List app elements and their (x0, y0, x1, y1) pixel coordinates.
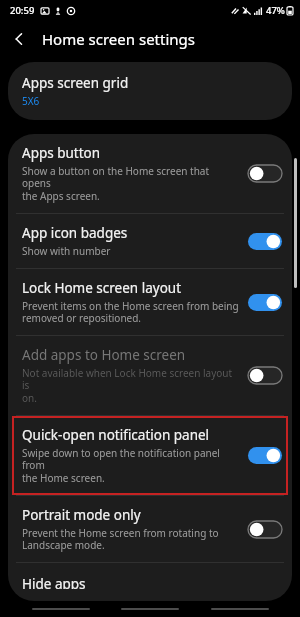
staticText: Swipe down to open the notification pane… (22, 446, 240, 485)
button[interactable]: Switch on (248, 294, 282, 311)
button[interactable]: Switch off (248, 367, 282, 384)
staticText: App icon badges (22, 224, 128, 242)
button[interactable]: Hide apps (8, 563, 292, 601)
staticText: Apps button (22, 144, 101, 162)
staticText: Prevent items on the Home screen from be… (22, 299, 239, 325)
button[interactable]: Switch on (248, 233, 282, 250)
button[interactable]: Home (121, 604, 179, 614)
staticText: Portrait mode only (22, 506, 141, 524)
button[interactable]: Quick-open notification panel (8, 416, 292, 495)
staticText: Show a button on the Home screen that op… (22, 164, 240, 203)
button[interactable]: Switch off (248, 165, 282, 182)
button[interactable]: Add apps to Home screen (8, 336, 292, 415)
button[interactable]: Back (211, 604, 269, 614)
staticText: 47% (266, 4, 285, 17)
button[interactable]: Portrait mode only (8, 496, 292, 562)
button[interactable]: Recents (32, 604, 90, 614)
button[interactable]: Back (0, 20, 38, 58)
staticText: Lock Home screen layout (22, 279, 182, 297)
staticText: Home screen settings (42, 29, 195, 49)
button[interactable]: Switch off (248, 521, 282, 538)
staticText: Add apps to Home screen (22, 346, 186, 364)
staticText: Prevent the Home screen from rotating to… (22, 526, 219, 552)
button[interactable]: Switch on (248, 447, 282, 464)
staticText: Apps screen grid (22, 74, 129, 92)
button[interactable]: Apps screen grid (8, 62, 292, 120)
staticText: Show with number (22, 244, 111, 258)
button[interactable]: Lock Home screen layout (8, 269, 292, 335)
staticText: 20:59 (10, 4, 35, 17)
staticText: Hide apps (22, 575, 86, 589)
button[interactable]: App icon badges (8, 214, 292, 268)
staticText: Quick-open notification panel (22, 426, 210, 444)
staticText: Not available when Lock Home screen layo… (22, 366, 240, 405)
button[interactable]: Apps button (8, 134, 292, 213)
staticText: 5X6 (22, 94, 40, 108)
